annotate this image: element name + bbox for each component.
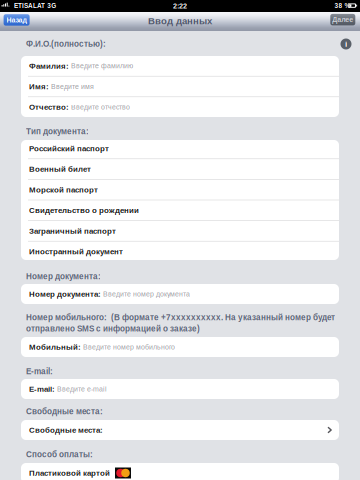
staticText: Мобильный: [29,343,81,351]
staticText: отправлено SMS с информацией о заказе) [26,324,200,333]
staticText: Введите номер документа [101,290,190,298]
staticText: Введите отчество [69,103,130,111]
button[interactable]: Военный билет [21,159,339,179]
staticText: Номер документа: [26,272,101,281]
staticText: Ввод данных [148,16,212,26]
staticText: Фамилия: [29,61,69,70]
button[interactable]: Отчество: [21,97,339,117]
button[interactable]: Иностранный документ [21,241,339,261]
staticText: Ф.И.О.(полностью): [26,39,106,49]
button[interactable]: Имя: [21,76,339,96]
staticText: Введите фамилию [69,62,133,70]
staticText: E-mail: [26,367,53,376]
button[interactable]: Пластиковой картой [21,463,339,480]
button[interactable]: Российский паспорт [21,138,339,158]
staticText: 38 % [334,2,350,9]
button[interactable]: Морской паспорт [21,180,339,200]
button[interactable]: Заграничный паспорт [21,221,339,241]
staticText: Имя: [29,82,49,91]
staticText: Российский паспорт [29,144,109,153]
button[interactable]: Свидетельство о рождении [21,200,339,220]
staticText: Свободные места: [29,426,103,434]
staticText: Далее [332,16,353,24]
staticText: Назад [7,16,27,24]
staticText: Заграничный паспорт [29,226,116,235]
staticText: Военный билет [29,165,91,173]
staticText: Номер мобильного: (В формате +7xxxxxxxxx… [26,313,335,322]
button[interactable]: Номер документа: [21,284,339,304]
button[interactable]: Назад [4,14,30,26]
staticText: E-mail: [29,385,55,393]
staticText: Способ оплаты: [26,450,93,459]
staticText: Иностранный документ [29,247,123,256]
staticText: Свидетельство о рождении [29,206,139,215]
button[interactable]: Информация [338,36,354,52]
staticText: ETISALAT [14,2,45,9]
staticText: 2:22 [173,2,187,10]
staticText: Введите номер мобильного [81,343,175,351]
staticText: Пластиковой картой [29,469,110,477]
button[interactable]: Свободные места: [21,420,339,440]
button[interactable]: Фамилия: [21,56,339,76]
staticText: 3G [47,2,56,9]
staticText: Номер документа: [29,290,101,298]
staticText: Тип документа: [26,127,89,136]
staticText: Морской паспорт [29,185,98,194]
staticText: Отчество: [29,103,69,111]
staticText: Введите e-mail [55,385,107,393]
staticText: Свободные места: [26,407,103,416]
button[interactable]: Мобильный: [21,337,339,357]
staticText: i [345,39,347,48]
button[interactable]: E-mail: [21,379,339,399]
staticText: Введите имя [49,83,94,90]
button[interactable]: Далее [330,14,355,25]
